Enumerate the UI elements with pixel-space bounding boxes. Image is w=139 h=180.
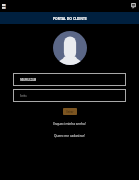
- staticText: Senha: [20, 94, 27, 98]
- staticText: PORTAL DO CLIENTE: [53, 16, 87, 21]
- staticText: Esqueci minha senha!: [53, 122, 86, 126]
- staticText: Entrar: [66, 109, 73, 114]
- button[interactable]: Profile picture: [53, 31, 87, 65]
- button[interactable]: Usuario: [13, 73, 126, 86]
- staticText: Quero me cadastrar!: [54, 134, 85, 138]
- button[interactable]: Senha: [13, 89, 126, 102]
- button[interactable]: Quero me cadastrar!: [48, 132, 91, 140]
- button[interactable]: Esqueci minha senha!: [47, 120, 92, 128]
- button[interactable]: Messages: [131, 3, 136, 9]
- button[interactable]: Entrar: [63, 108, 77, 115]
- staticText: 949.893.522-88: [20, 78, 36, 82]
- button[interactable]: Notifications: [2, 4, 6, 9]
